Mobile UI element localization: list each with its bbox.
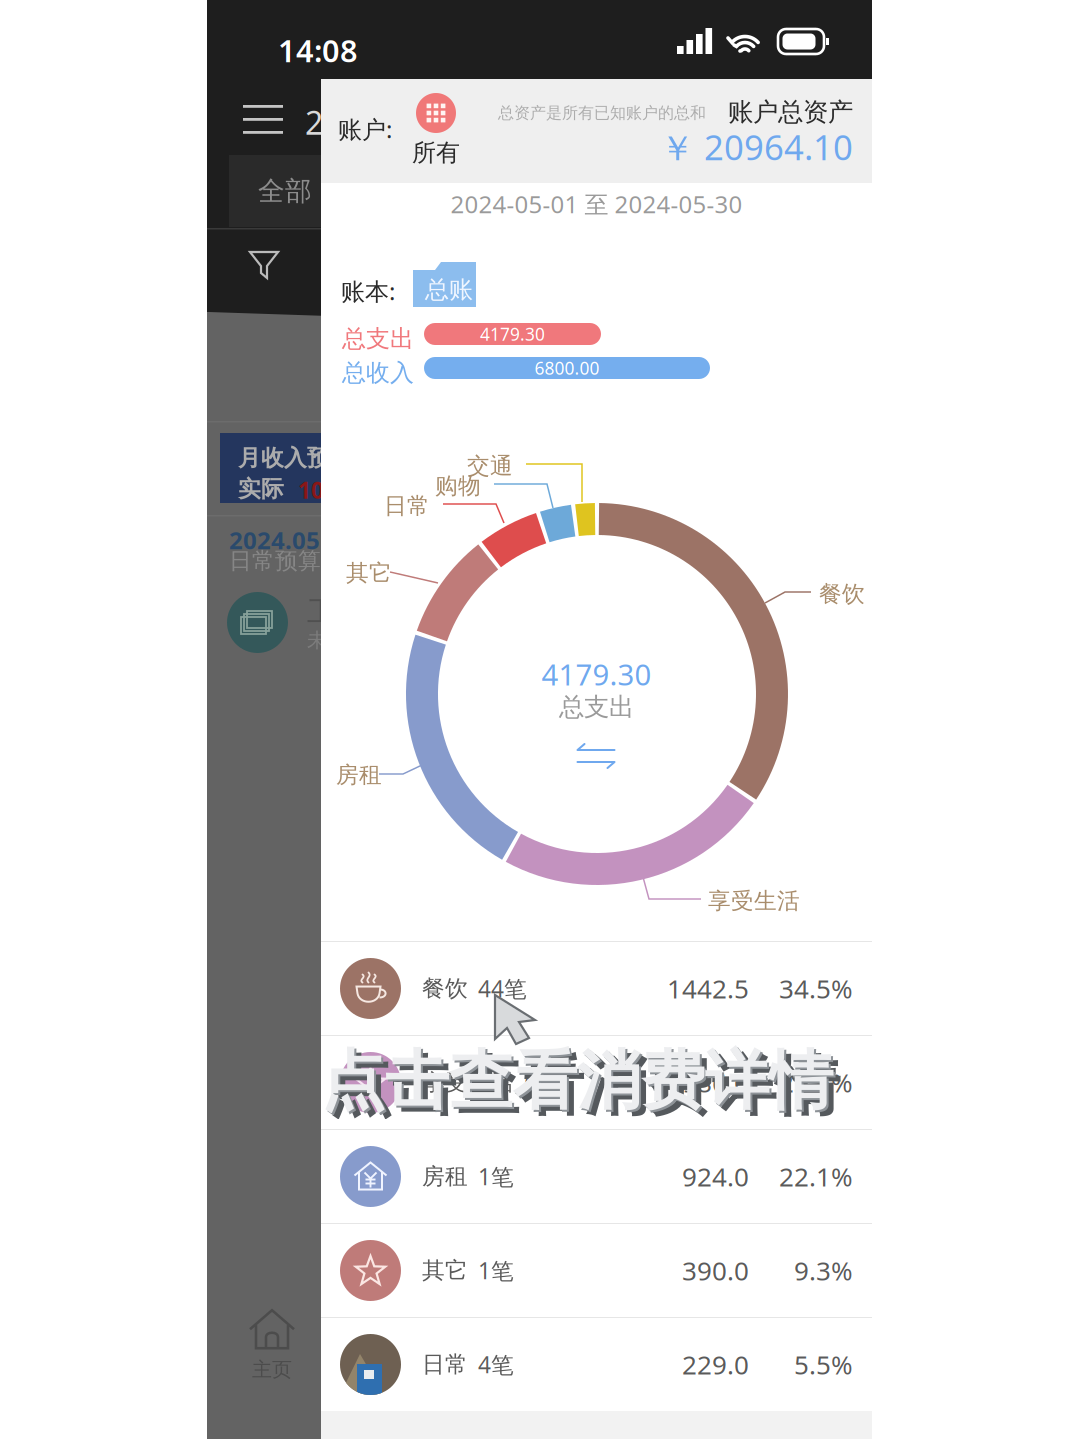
- staticText: 主页: [252, 1357, 292, 1382]
- staticText: 6800.00: [685, 372, 834, 425]
- staticText: 2024: [305, 101, 377, 143]
- staticText: 全部: [258, 175, 312, 207]
- staticText: 986.0: [682, 1065, 749, 1100]
- staticText: 14:08: [278, 30, 358, 71]
- staticText: 点击查看消费详情: [323, 1044, 835, 1122]
- staticText: 4179.30: [480, 322, 545, 345]
- staticText: 账户总资产: [728, 96, 853, 127]
- staticText: 房租: [336, 761, 382, 789]
- staticText: 229.0: [682, 1347, 749, 1382]
- button[interactable]: 主页: [217, 1306, 327, 1382]
- staticText: 44笔: [478, 973, 527, 1004]
- staticText: 1笔: [478, 1161, 514, 1192]
- button[interactable]: 餐饮: [321, 942, 872, 1035]
- staticText: 其它: [346, 559, 392, 587]
- staticText: ￥ 20964.10: [660, 124, 853, 170]
- staticText: 23.6%: [779, 1065, 853, 1100]
- staticText: 账户:: [338, 113, 392, 145]
- staticText: 2024.05.15: [229, 524, 355, 556]
- staticText: 924.0: [682, 1159, 749, 1194]
- staticText: 房租: [422, 1162, 468, 1191]
- staticText: 1笔: [478, 1255, 514, 1286]
- staticText: 工资: [307, 594, 365, 630]
- staticText: 9.3%: [794, 1253, 853, 1288]
- staticText: 月收入预算: [238, 444, 353, 472]
- staticText: 餐饮: [819, 580, 865, 608]
- staticText: 总账: [425, 275, 473, 304]
- staticText: 未知账户: [307, 628, 387, 653]
- staticText: 4笔: [478, 1349, 514, 1380]
- staticText: 账本:: [341, 275, 395, 307]
- staticText: 5.5%: [794, 1347, 853, 1382]
- staticText: 日常: [422, 1350, 468, 1379]
- staticText: 6笔: [524, 1067, 560, 1098]
- staticText: 享受生活: [422, 1068, 514, 1097]
- staticText: 点击查看消费详情: [328, 1048, 840, 1126]
- staticText: 享受生活: [708, 887, 800, 915]
- button[interactable]: 日常: [321, 1318, 872, 1411]
- staticText: 390.0: [682, 1253, 749, 1288]
- button[interactable]: 其它: [321, 1224, 872, 1317]
- button[interactable]: 房租: [321, 1130, 872, 1223]
- staticText: 交通: [467, 452, 513, 480]
- staticText: 6800.00: [534, 356, 599, 379]
- staticText: 总收入: [342, 358, 414, 387]
- staticText: 其它: [422, 1256, 468, 1285]
- staticText: 日常: [384, 492, 430, 520]
- button[interactable]: 享受生活: [321, 1036, 872, 1129]
- staticText: 1442.5: [667, 971, 749, 1006]
- staticText: 总支出: [342, 324, 414, 353]
- staticText: 实际: [238, 475, 284, 503]
- button[interactable]: 总账: [413, 262, 476, 307]
- staticText: 日常预算收(支): [229, 545, 381, 575]
- staticText: 34.5%: [779, 971, 853, 1006]
- button[interactable]: 所有: [405, 93, 467, 175]
- staticText: 22.1%: [779, 1159, 853, 1194]
- staticText: 点击查看消费详情: [321, 1042, 833, 1120]
- staticText: 109%: [298, 475, 357, 505]
- staticText: 总资产是所有已知账户的总和: [498, 103, 706, 123]
- staticText: 购物: [435, 472, 481, 500]
- staticText: 所有: [412, 138, 460, 167]
- staticText: 餐饮: [422, 974, 468, 1003]
- staticText: 4179.30: [541, 654, 651, 693]
- staticText: 2024-05-01 至 2024-05-30: [450, 188, 742, 220]
- staticText: 总支出: [559, 691, 634, 722]
